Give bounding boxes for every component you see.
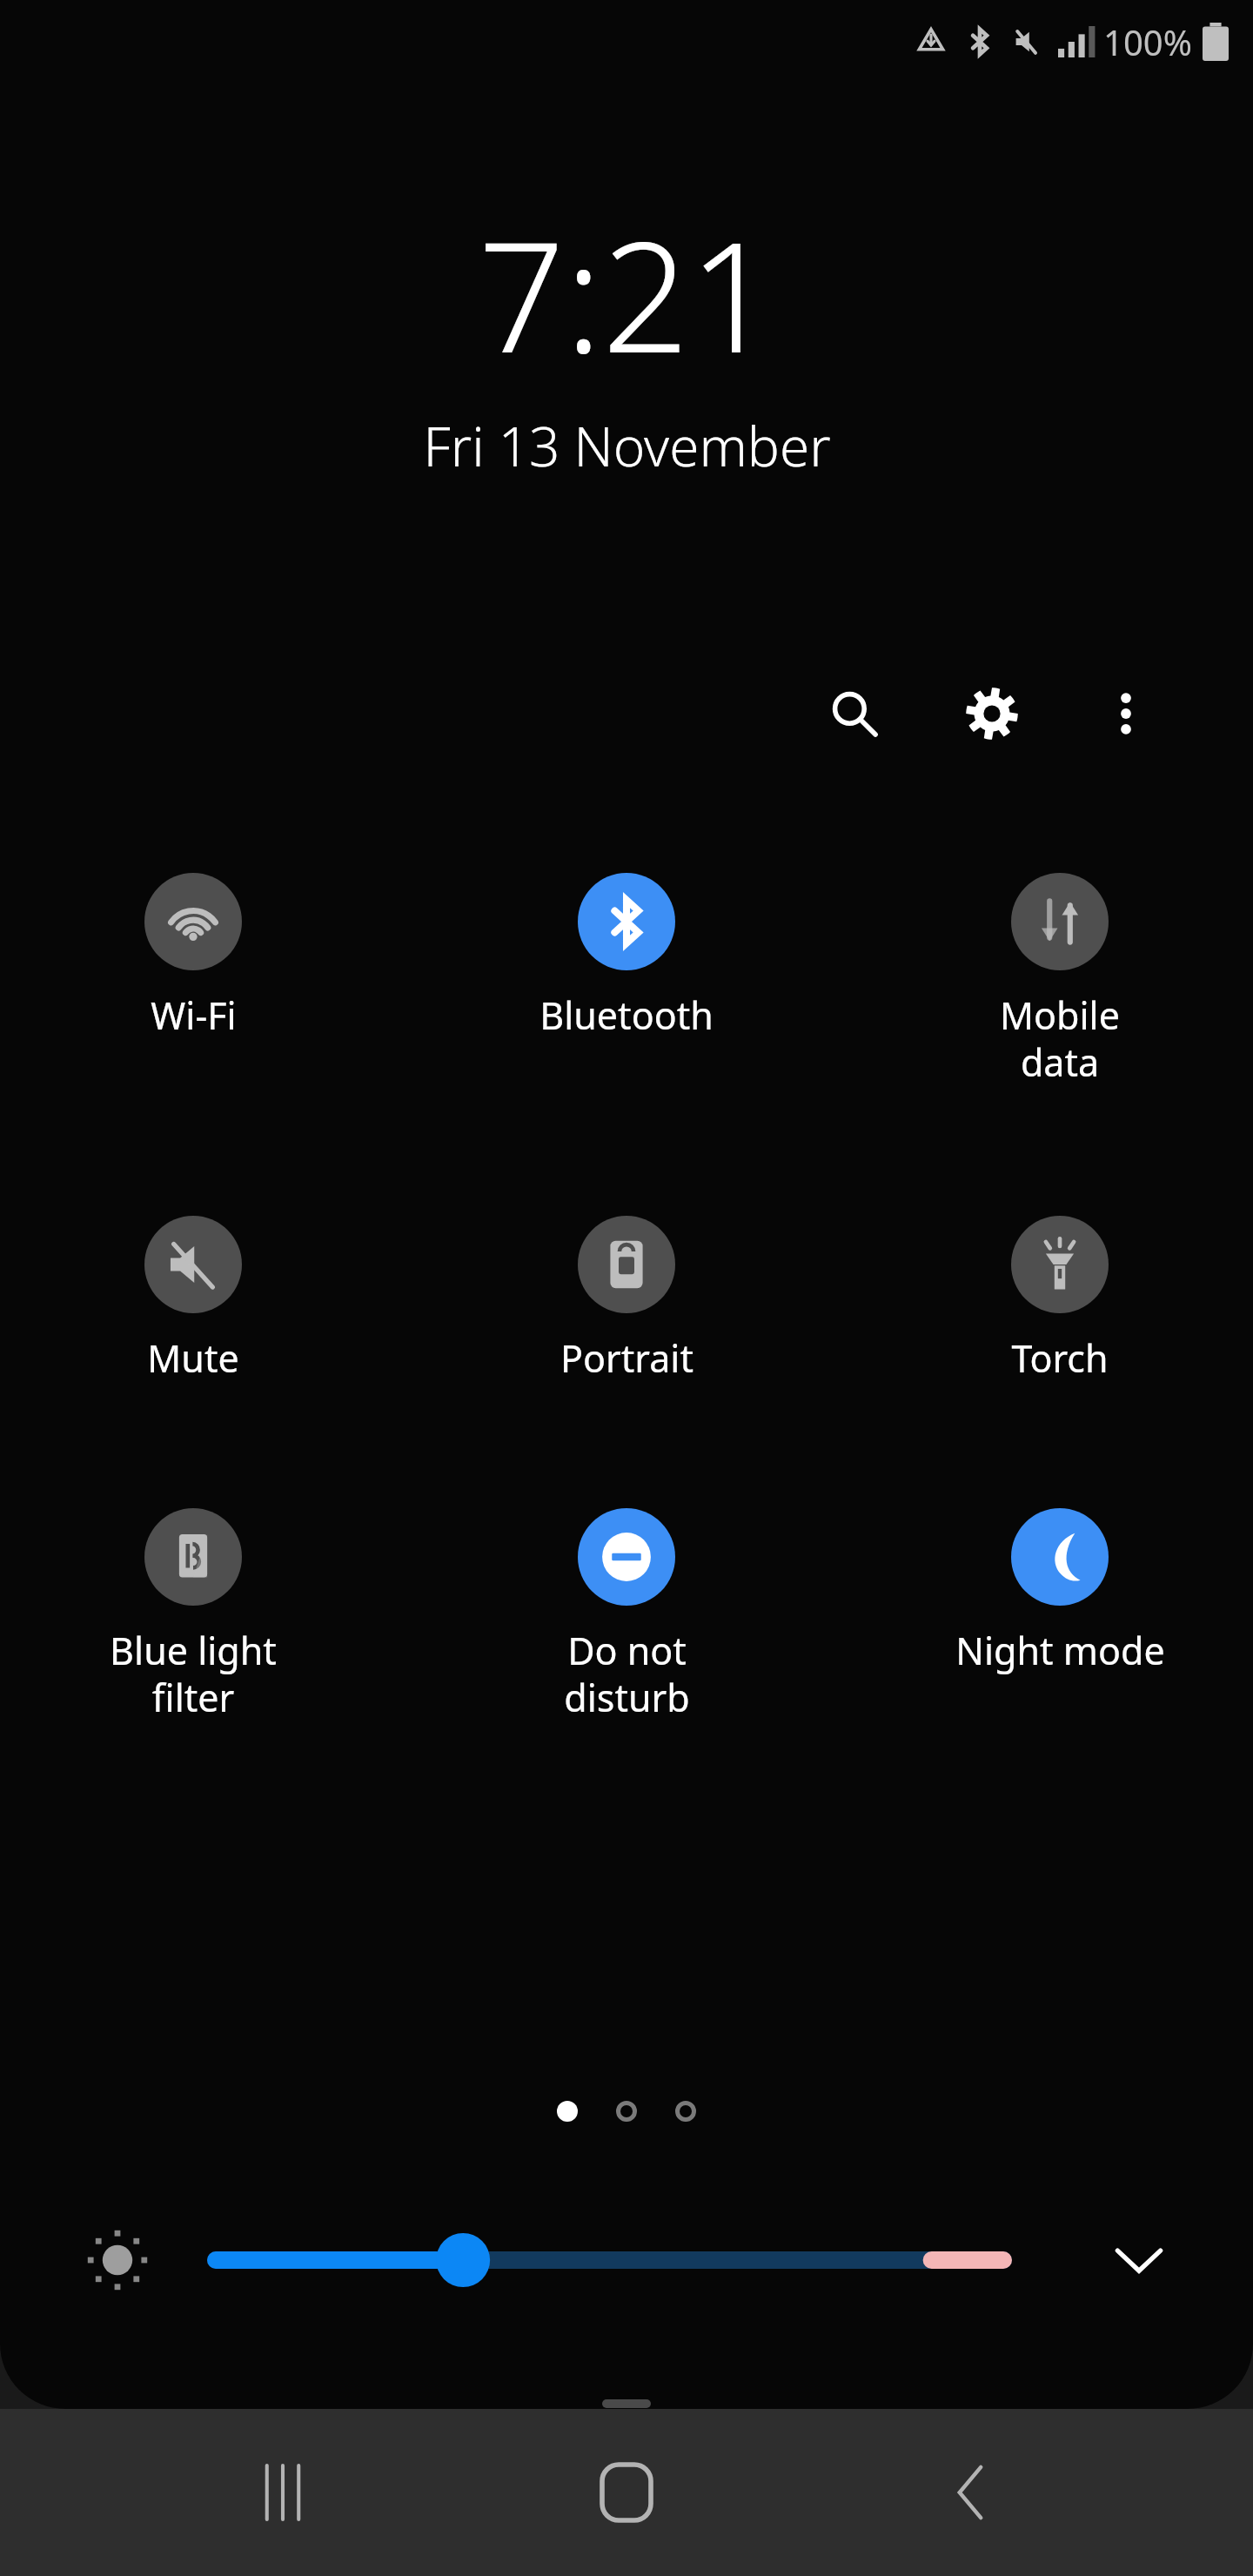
button[interactable]: Mobile data: [929, 873, 1190, 1088]
button[interactable]: Mute: [63, 1216, 324, 1384]
button[interactable]: More options: [1082, 670, 1169, 757]
staticText: Blue light filter: [110, 1625, 277, 1723]
staticText: 100%: [1103, 18, 1192, 65]
button[interactable]: Wi-Fi: [63, 873, 324, 1041]
staticText: Night mode: [955, 1625, 1165, 1676]
button[interactable]: Expand: [1091, 2212, 1187, 2308]
button[interactable]: Search: [811, 670, 898, 757]
button[interactable]: Torch: [929, 1216, 1190, 1384]
button[interactable]: Back: [909, 2432, 1031, 2553]
staticText: Wi-Fi: [151, 989, 237, 1041]
button[interactable]: Bluetooth: [496, 873, 757, 1041]
staticText: Portrait: [560, 1332, 694, 1384]
button[interactable]: Home: [566, 2432, 687, 2553]
button[interactable]: Do not disturb: [496, 1508, 757, 1723]
button[interactable]: Portrait: [496, 1216, 757, 1384]
staticText: Torch: [1011, 1332, 1109, 1384]
staticText: Do not disturb: [564, 1625, 690, 1723]
staticText: 7:21: [478, 190, 776, 397]
staticText: Mute: [147, 1332, 239, 1384]
button[interactable]: Settings: [948, 670, 1035, 757]
button[interactable]: Night mode: [929, 1508, 1190, 1676]
button[interactable]: Brightness slider: [198, 2208, 1021, 2312]
button[interactable]: Brightness: [66, 2209, 169, 2311]
button[interactable]: Blue light filter: [63, 1508, 324, 1723]
staticText: Mobile data: [1000, 989, 1120, 1088]
button[interactable]: Recents: [222, 2432, 344, 2553]
staticText: Fri 13 November: [423, 409, 831, 482]
staticText: Bluetooth: [539, 989, 714, 1041]
